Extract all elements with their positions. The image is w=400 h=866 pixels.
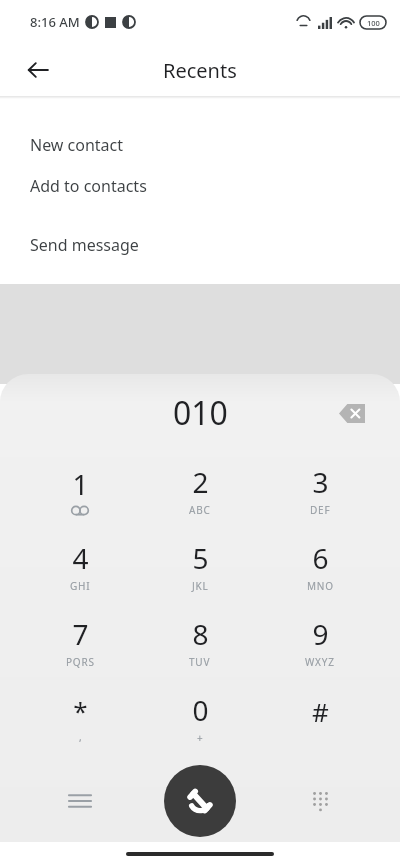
staticText: PQRS [66, 655, 95, 669]
staticText: 100 [367, 18, 380, 28]
staticText: 2 [192, 463, 209, 501]
button[interactable]: 4 [20, 528, 140, 604]
staticText: GHI [70, 579, 91, 593]
staticText: 8 [192, 615, 209, 653]
staticText: 3 [312, 463, 329, 501]
staticText: 9 [312, 615, 329, 653]
staticText: New contact [30, 134, 124, 156]
staticText: 010 [173, 391, 228, 435]
staticText: 4 [72, 539, 89, 577]
button[interactable]: 5 [140, 528, 260, 604]
staticText: Add to contacts [30, 175, 147, 197]
staticText: + [197, 731, 204, 745]
staticText: 1 [72, 465, 89, 503]
staticText: WXYZ [305, 655, 335, 669]
button[interactable]: Send message [0, 215, 400, 274]
button[interactable]: 7 [20, 604, 140, 680]
button[interactable]: Call [164, 765, 236, 837]
staticText: 5 [192, 539, 209, 577]
button[interactable]: 1 [20, 452, 140, 528]
button[interactable]: Hide dialpad [260, 760, 380, 842]
button[interactable]: 3 [260, 452, 380, 528]
button[interactable]: 0 [140, 680, 260, 756]
button[interactable]: Call log [20, 760, 140, 842]
staticText: , [79, 730, 83, 744]
button[interactable]: Back [14, 46, 62, 94]
staticText: ABC [189, 503, 211, 517]
staticText: 0 [192, 691, 209, 729]
staticText: # [312, 694, 329, 729]
button[interactable]: New contact [0, 134, 400, 156]
button[interactable]: * [20, 680, 140, 756]
staticText: TUV [189, 655, 211, 669]
staticText: JKL [192, 579, 209, 593]
staticText: 7 [72, 615, 89, 653]
staticText: Send message [30, 234, 139, 256]
button[interactable]: Backspace [330, 391, 374, 435]
staticText: 6 [312, 539, 329, 577]
button[interactable]: 2 [140, 452, 260, 528]
button[interactable]: 8 [140, 604, 260, 680]
button[interactable]: 6 [260, 528, 380, 604]
staticText: Recents [163, 57, 237, 84]
staticText: MNO [307, 579, 334, 593]
staticText: DEF [310, 503, 331, 517]
button[interactable]: Add to contacts [0, 156, 400, 215]
staticText: * [73, 693, 88, 728]
button[interactable]: # [260, 680, 380, 756]
staticText: 8:16 AM [30, 13, 80, 31]
button[interactable]: 9 [260, 604, 380, 680]
